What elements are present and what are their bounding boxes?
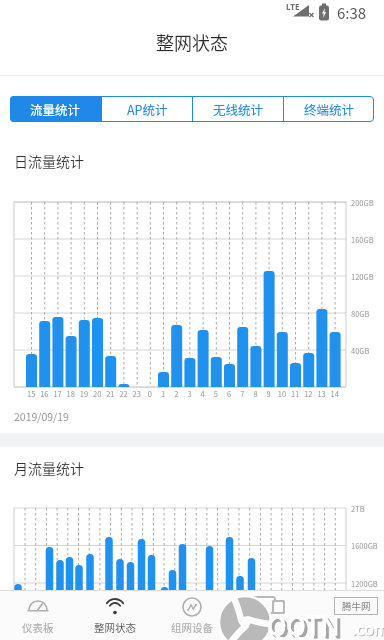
staticText: 6:38 xyxy=(337,2,367,24)
button[interactable]: 终端统计 xyxy=(284,96,374,122)
staticText: .com xyxy=(353,617,384,640)
staticText: 日流量统计 xyxy=(14,151,84,171)
staticText: 流量统计 xyxy=(30,100,81,118)
staticText: .com xyxy=(352,616,384,639)
button[interactable]: 流量统计 xyxy=(10,96,101,122)
button[interactable]: AP统计 xyxy=(102,96,192,122)
staticText: QQTN xyxy=(270,608,343,640)
staticText: 仪表板 xyxy=(22,620,54,635)
staticText: QQTN xyxy=(267,605,340,640)
staticText: 终端统计 xyxy=(304,100,355,118)
button[interactable]: 组网设备 xyxy=(153,590,230,640)
button[interactable] xyxy=(307,590,384,640)
staticText: 2019/09/19 xyxy=(14,409,69,424)
staticText: 月流量统计 xyxy=(14,458,84,478)
button[interactable]: 无线统计 xyxy=(193,96,283,122)
button[interactable]: 仪表板 xyxy=(0,590,76,640)
staticText: AP统计 xyxy=(127,100,168,118)
staticText: 组网设备 xyxy=(171,620,213,635)
staticText: 整网状态 xyxy=(94,620,136,635)
staticText: LTE xyxy=(286,1,300,12)
staticText: 腾牛网 xyxy=(342,599,371,613)
staticText: 整网状态 xyxy=(156,29,228,55)
button[interactable] xyxy=(230,590,307,640)
staticText: 无线统计 xyxy=(213,100,264,118)
button[interactable]: 整网状态 xyxy=(76,590,153,640)
